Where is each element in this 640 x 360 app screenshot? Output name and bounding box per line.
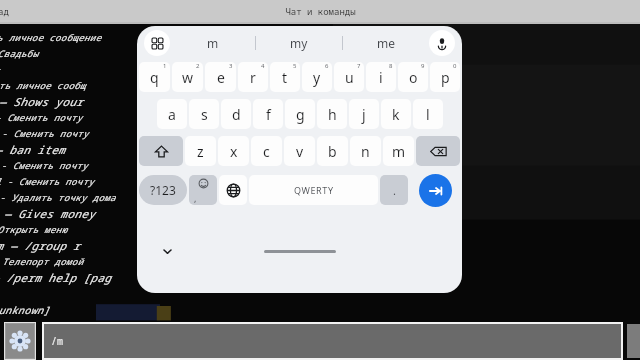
button[interactable]: m (170, 26, 255, 60)
staticText: ад (0, 5, 9, 17)
button[interactable]: n (350, 136, 381, 166)
staticText: n (361, 142, 370, 161)
staticText: l (426, 105, 430, 124)
staticText: . (393, 183, 396, 198)
staticText: noney — Gives money (0, 206, 95, 221)
button[interactable]: v (284, 136, 315, 166)
staticText: il - Сменить почту (0, 111, 83, 123)
staticText: i (379, 68, 383, 87)
button[interactable]: g (285, 99, 315, 129)
button[interactable]: Enter (419, 174, 452, 207)
staticText: w (182, 68, 194, 87)
button[interactable]: b (317, 136, 348, 166)
button[interactable]: m (383, 136, 414, 166)
staticText: k (392, 105, 400, 124)
staticText: h (328, 105, 337, 124)
button[interactable]: Shift (139, 136, 183, 166)
button[interactable]: ?123 (139, 175, 187, 205)
button[interactable]: q (139, 62, 170, 92)
button[interactable]: . (380, 175, 408, 205)
staticText: e (217, 68, 225, 87)
staticText: Отправить личное сообщ (0, 79, 86, 91)
staticText: - Открыть меню (0, 223, 68, 235)
staticText: d (232, 105, 241, 124)
staticText: c (263, 142, 270, 161)
staticText: l - Сменить почту (0, 127, 89, 139)
staticText: my (290, 35, 308, 51)
staticText: править личное сообщение (0, 31, 102, 43)
staticText: 3 (229, 62, 233, 70)
staticText: e - Удалить точку дома (0, 191, 116, 203)
staticText: b (328, 142, 337, 161)
button[interactable]: /m (44, 324, 621, 358)
staticText: r (250, 68, 256, 87)
button[interactable]: l (413, 99, 443, 129)
staticText: oney — Shows your (0, 94, 83, 109)
staticText: x (230, 142, 238, 161)
staticText: email - Сменить почту (0, 159, 88, 171)
staticText: z (197, 142, 204, 161)
button[interactable]: e (205, 62, 236, 92)
button[interactable]: w (172, 62, 203, 92)
staticText: 4 (261, 62, 265, 70)
staticText: pperm — /group r (0, 238, 80, 253)
button[interactable]: r (238, 62, 268, 92)
button[interactable]: Change language (219, 175, 247, 205)
button[interactable]: t (270, 62, 300, 92)
button[interactable]: ад (0, 0, 11, 22)
staticText: o (409, 68, 418, 87)
button[interactable]: o (398, 62, 428, 92)
staticText: 0 (453, 62, 457, 70)
staticText: a (168, 105, 176, 124)
staticText: u (345, 68, 354, 87)
staticText: q (150, 68, 159, 87)
button[interactable]: Backspace (416, 136, 460, 166)
staticText: args: unknown] (0, 303, 50, 317)
button[interactable]: u (334, 62, 364, 92)
staticText: f (266, 105, 271, 124)
button[interactable]: x (218, 136, 249, 166)
staticText: QWERTY (294, 184, 334, 196)
button[interactable]: z (185, 136, 216, 166)
staticText: 1 (163, 62, 167, 70)
staticText: em — ban item (0, 142, 65, 157)
button[interactable]: Voice input (429, 30, 455, 56)
button[interactable]: my (256, 26, 342, 60)
button[interactable]: d (221, 99, 251, 129)
button[interactable]: me (343, 26, 429, 60)
button[interactable]: c (251, 136, 282, 166)
button[interactable]: f (253, 99, 283, 129)
staticText: p (441, 68, 450, 87)
staticText: 6 (325, 62, 329, 70)
staticText: j (362, 105, 366, 124)
button[interactable]: Settings (4, 322, 36, 360)
button[interactable]: Hide keyboard (159, 243, 175, 259)
button[interactable]: h (317, 99, 347, 129)
button[interactable]: QWERTY (249, 175, 378, 205)
staticText: s (201, 105, 208, 124)
staticText: , (194, 192, 197, 204)
staticText: m (207, 35, 219, 51)
staticText: Телепорт домой (2, 255, 84, 267)
button[interactable]: y (302, 62, 332, 92)
staticText: me (377, 35, 395, 51)
button[interactable]: s (189, 99, 219, 129)
staticText: t (282, 68, 288, 87)
button[interactable]: p (430, 62, 460, 92)
staticText: 5 (293, 62, 297, 70)
staticText: ?123 (150, 182, 176, 198)
staticText: v (296, 142, 304, 161)
button[interactable]: i (366, 62, 396, 92)
button[interactable]: j (349, 99, 379, 129)
staticText: 8 (389, 62, 393, 70)
button[interactable]: k (381, 99, 411, 129)
staticText: — /perm help [pag (0, 270, 111, 285)
staticText: y (313, 68, 321, 87)
button[interactable]: Keyboard menu (144, 30, 170, 56)
button[interactable]: a (157, 99, 187, 129)
button[interactable]: Emoji and comma (189, 175, 217, 205)
staticText: - Свадьбы (0, 47, 39, 59)
staticText: /m (51, 334, 63, 348)
staticText: 9 (421, 62, 425, 70)
staticText: g (296, 105, 305, 124)
